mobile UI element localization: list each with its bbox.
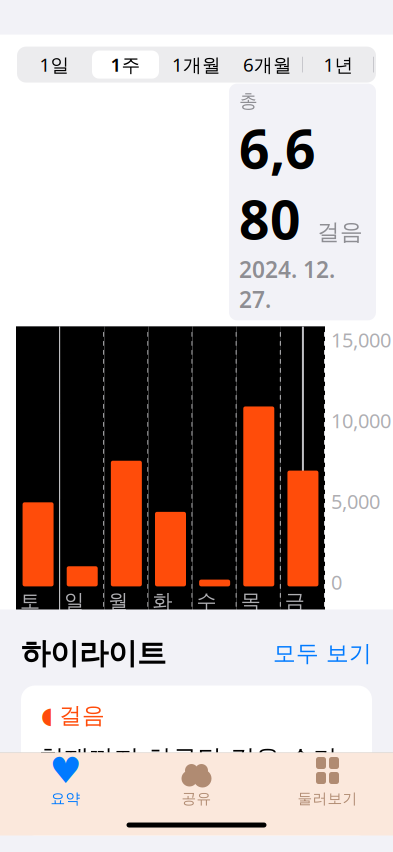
staticText: 15,000 — [331, 326, 391, 353]
staticText: 현재까지 하루당 걸음 수가 작년보다 늘었습니다. — [39, 743, 338, 808]
staticText: ❮ — [9, 75, 34, 109]
button[interactable]: ♥ — [0, 747, 131, 807]
button[interactable]: 공유 — [131, 747, 262, 807]
staticText: 10,000 — [331, 407, 391, 434]
staticText: 계산할 수 없음 — [204, 647, 356, 675]
staticText: 2024. 12. 27. — [239, 254, 335, 314]
button[interactable]: 둘러보기 — [262, 747, 393, 807]
staticText: 9:47 — [30, 28, 75, 58]
staticText: 하이라이트 — [21, 635, 166, 671]
staticText: 1년 — [323, 52, 353, 77]
button[interactable]: 6개월 — [232, 49, 303, 81]
staticText: 일 — [64, 589, 84, 614]
staticText: 요약 — [50, 789, 80, 807]
staticText: 1개월 — [172, 52, 221, 77]
staticText: ♥ — [49, 750, 81, 791]
staticText: 총 — [239, 90, 258, 112]
staticText: 모두 보기 — [273, 640, 372, 667]
staticText: 금 — [285, 589, 305, 614]
staticText: 1일 — [39, 52, 69, 77]
staticText: 화 — [152, 589, 172, 614]
staticText: 둘러보기 — [297, 789, 357, 807]
staticText: 수 — [197, 589, 217, 614]
staticText: 0 — [331, 569, 342, 595]
button[interactable]: 1일 — [19, 49, 90, 81]
button[interactable]: 데이터 추가 — [251, 70, 384, 113]
staticText: 걸음 — [317, 218, 363, 246]
staticText: 추세 — [37, 647, 83, 675]
staticText: 1주 — [110, 52, 140, 77]
staticText: 6개월 — [243, 52, 292, 77]
staticText: 걸음 — [59, 701, 105, 729]
staticText: ◗ — [313, 32, 324, 55]
staticText: ◖ — [41, 703, 53, 728]
staticText: 목 — [241, 589, 261, 614]
staticText: 6,680 — [239, 112, 316, 254]
button[interactable]: 1개월 — [161, 49, 232, 81]
staticText: 요약 — [40, 76, 90, 107]
staticText: 걸음 — [145, 76, 195, 107]
staticText: 데이터 추가 — [251, 76, 384, 107]
staticText: 공유 — [181, 789, 211, 807]
staticText: 월 — [108, 589, 128, 614]
button[interactable]: 추세 — [21, 634, 372, 688]
button[interactable]: 1주 — [90, 49, 161, 81]
button[interactable]: ◖ — [21, 685, 372, 835]
button[interactable]: 1년 — [303, 49, 374, 81]
button[interactable]: ❮ — [9, 69, 90, 115]
staticText: 토 — [20, 589, 40, 614]
button[interactable]: 모두 보기 — [273, 640, 372, 667]
staticText: 5,000 — [331, 488, 380, 515]
